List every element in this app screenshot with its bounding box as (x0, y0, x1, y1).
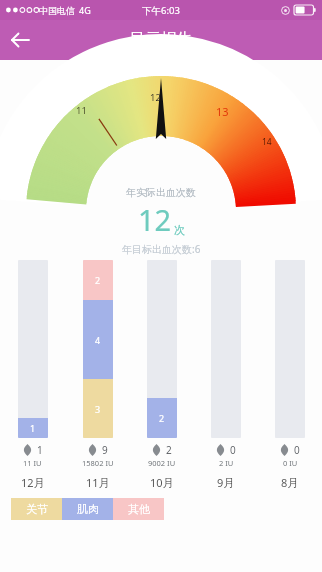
staticText: 年目标出血次数:6 (122, 242, 201, 256)
staticText: 12月 (21, 475, 45, 490)
staticText: 11 IU (23, 458, 42, 468)
button[interactable]: 其他 (113, 498, 164, 520)
staticText: 中国电信 (39, 5, 75, 16)
staticText: 14 (262, 136, 272, 148)
staticText: 2 IU (219, 458, 234, 468)
button[interactable]: 0 (194, 260, 258, 490)
staticText: 0 (230, 443, 236, 457)
button[interactable]: 2 (130, 260, 194, 490)
staticText: 其他 (128, 502, 150, 516)
staticText: 2 (166, 443, 172, 457)
staticText: 肌肉 (77, 502, 99, 516)
staticText: 下午6:03 (142, 4, 180, 17)
staticText: 2 (159, 412, 165, 424)
staticText: 次 (174, 223, 185, 237)
staticText: 关节 (26, 502, 48, 516)
staticText: 2 (95, 274, 101, 286)
staticText: 1 (37, 443, 43, 457)
staticText: 11月 (86, 475, 110, 490)
staticText: 3 (95, 403, 101, 415)
staticText: 0 (294, 443, 300, 457)
button[interactable]: 关节 (11, 498, 62, 520)
staticText: 显示报告 (129, 30, 193, 50)
staticText: 13 (216, 104, 229, 119)
staticText: 4 (95, 334, 101, 346)
staticText: 15802 IU (82, 458, 114, 468)
staticText: 9 (102, 443, 108, 457)
button[interactable]: 2 (65, 260, 130, 490)
staticText: 1 (30, 422, 36, 434)
staticText: 11 (76, 104, 87, 117)
staticText: 4G (79, 4, 91, 16)
staticText: 8月 (281, 475, 299, 490)
staticText: 0 IU (283, 458, 298, 468)
button[interactable]: 肌肉 (62, 498, 113, 520)
staticText: 年实际出血次数 (126, 186, 196, 199)
button[interactable]: 1 (0, 260, 65, 490)
staticText: 10月 (150, 475, 174, 490)
staticText: 12 (150, 91, 161, 104)
staticText: 9002 IU (148, 458, 176, 468)
button[interactable]: 0 (258, 260, 322, 490)
staticText: 9月 (217, 475, 235, 490)
staticText: 12 (138, 200, 172, 239)
button[interactable]: Back (0, 20, 40, 60)
